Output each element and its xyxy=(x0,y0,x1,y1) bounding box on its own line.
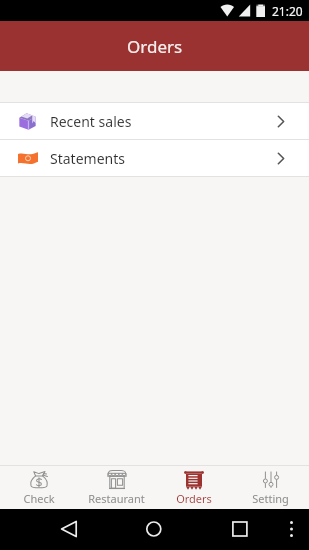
staticText: 21:20 xyxy=(272,3,303,19)
button[interactable]: Setting xyxy=(232,469,309,506)
button[interactable]: Recent apps xyxy=(189,509,275,550)
button[interactable]: Home xyxy=(104,509,189,550)
button[interactable]: Orders xyxy=(155,469,232,506)
staticText: Check xyxy=(23,491,55,506)
staticText: Setting xyxy=(252,491,289,506)
button[interactable]: More options xyxy=(275,509,309,550)
staticText: Restaurant xyxy=(88,491,145,506)
staticText: Recent sales xyxy=(50,112,132,131)
button[interactable]: Restaurant xyxy=(78,469,155,506)
staticText: Statements xyxy=(50,149,125,168)
button[interactable]: Recent sales xyxy=(0,103,309,139)
staticText: Orders xyxy=(176,491,212,506)
button[interactable]: Back xyxy=(0,509,104,550)
button[interactable]: Check xyxy=(0,469,78,506)
staticText: Orders xyxy=(127,35,183,58)
button[interactable]: Statements xyxy=(0,140,309,176)
